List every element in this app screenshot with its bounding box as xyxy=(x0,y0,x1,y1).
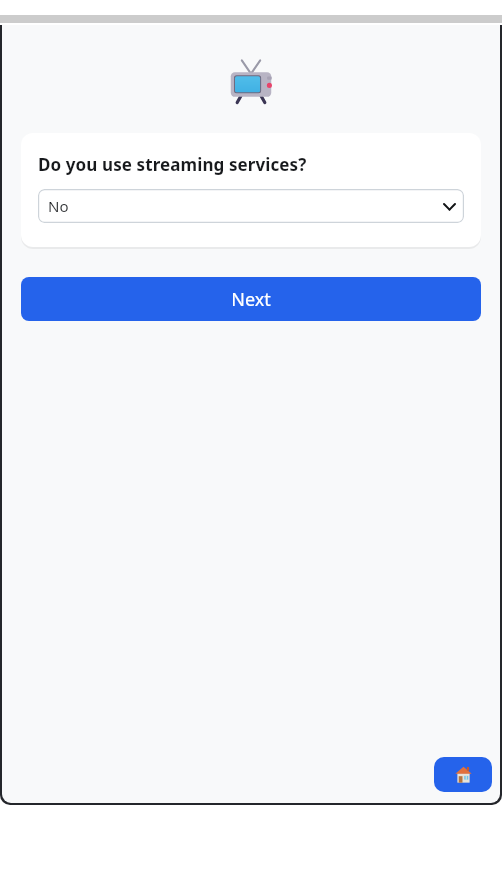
staticText: No xyxy=(48,196,69,216)
staticText: Do you use streaming services? xyxy=(38,153,307,176)
button[interactable]: Home xyxy=(434,757,492,792)
button[interactable]: Next xyxy=(21,277,481,321)
button[interactable]: No xyxy=(38,189,464,223)
staticText: Next xyxy=(231,287,271,312)
